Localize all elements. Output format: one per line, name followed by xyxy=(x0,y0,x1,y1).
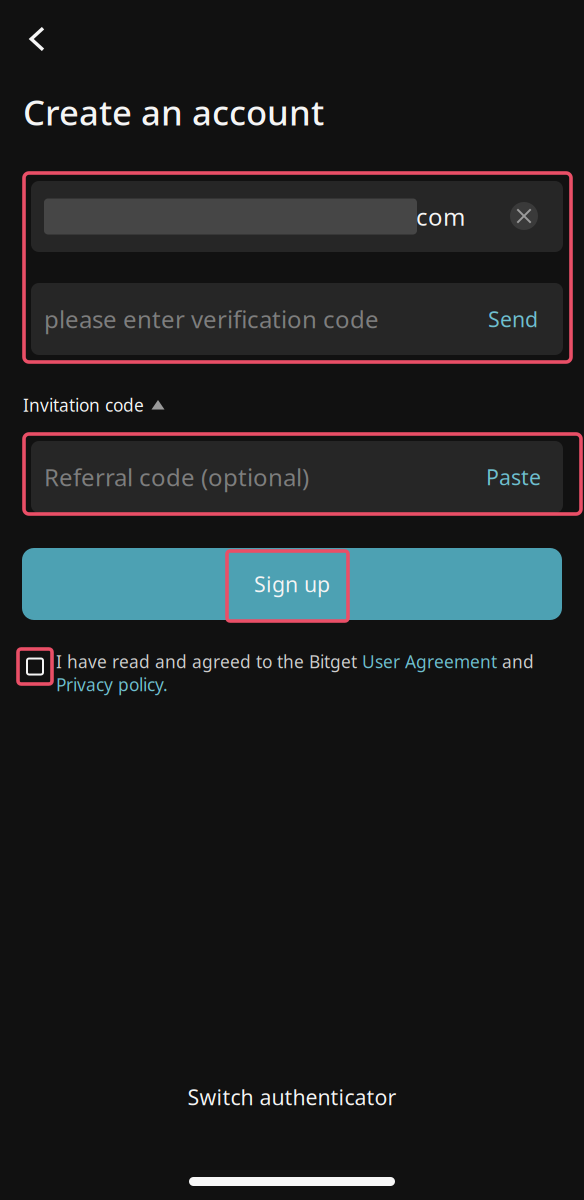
staticText: I have read and agreed to the Bitget xyxy=(56,650,362,673)
button[interactable]: Paste xyxy=(479,454,541,500)
button[interactable]: Clear text xyxy=(510,202,538,230)
button[interactable]: Privacy policy. xyxy=(56,673,168,696)
button[interactable]: Verification code xyxy=(31,283,563,355)
staticText: Create an account xyxy=(23,89,324,135)
staticText: Sign up xyxy=(254,570,330,598)
staticText: Referral code (optional) xyxy=(44,461,309,493)
staticText: User Agreement xyxy=(362,650,497,673)
staticText: please enter verification code xyxy=(44,303,379,335)
button[interactable]: Email address xyxy=(31,181,563,252)
button[interactable]: Agree to terms xyxy=(18,649,52,684)
staticText: Invitation code xyxy=(23,393,144,416)
button[interactable]: Invitation code xyxy=(23,389,165,421)
button[interactable]: Sign up xyxy=(22,548,562,620)
staticText: com xyxy=(416,201,465,232)
button[interactable]: User Agreement xyxy=(362,650,497,673)
staticText: Switch authenticator xyxy=(187,1083,396,1111)
button[interactable]: Referral code xyxy=(31,441,563,513)
staticText: Send xyxy=(488,305,538,333)
button[interactable]: Switch authenticator xyxy=(162,1075,422,1119)
button[interactable]: Back xyxy=(10,12,64,66)
staticText: Privacy policy. xyxy=(56,673,168,696)
staticText: and xyxy=(497,650,534,673)
staticText: Paste xyxy=(486,463,541,491)
button[interactable]: Send xyxy=(476,296,538,342)
